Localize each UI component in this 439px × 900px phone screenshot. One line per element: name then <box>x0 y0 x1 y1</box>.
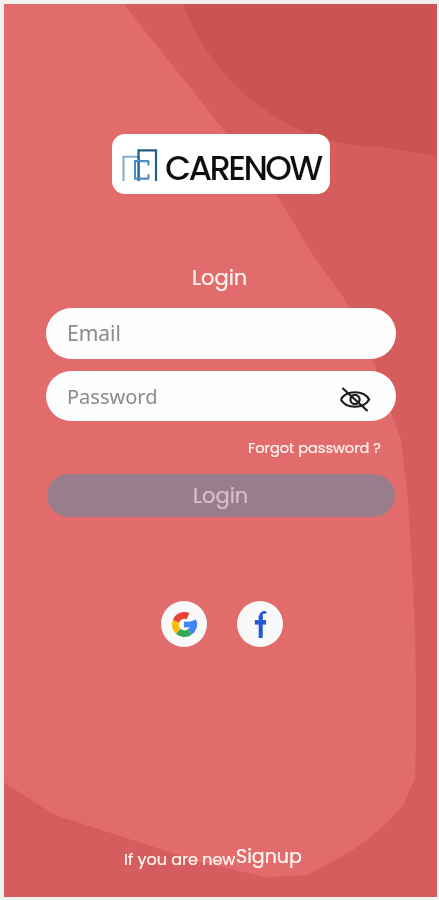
staticText: If you are new <box>124 848 236 870</box>
button[interactable]: Show password <box>338 383 371 416</box>
staticText: Login <box>192 263 248 292</box>
staticText: Email <box>67 319 121 348</box>
button[interactable]: Sign in with Google <box>161 601 207 647</box>
button[interactable]: Signup <box>236 843 302 870</box>
staticText: Login <box>193 481 249 510</box>
button[interactable]: Forgot password ? <box>248 438 381 458</box>
button[interactable]: Password <box>46 371 396 421</box>
button[interactable]: Sign in with Facebook <box>237 601 283 647</box>
button[interactable]: CareNow logo <box>112 134 330 194</box>
button[interactable]: Login <box>47 474 395 517</box>
staticText: Password <box>67 383 158 410</box>
staticText: CARENOW <box>165 144 321 192</box>
staticText: Forgot password ? <box>248 438 381 458</box>
button[interactable]: Email <box>46 308 396 359</box>
